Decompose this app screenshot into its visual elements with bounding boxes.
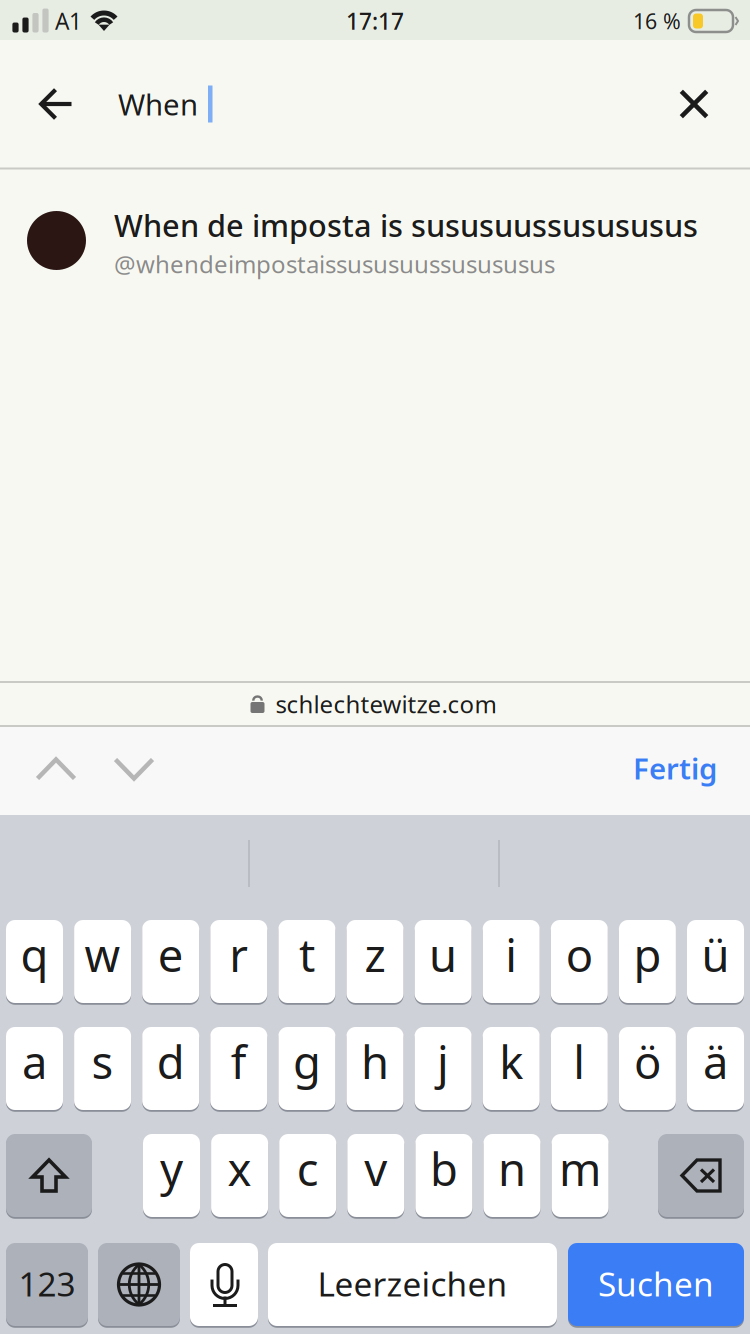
button[interactable]: schlechtewitze.com (123, 682, 623, 726)
button[interactable]: e (142, 917, 199, 1005)
button[interactable]: When de imposta is sususuussusususus (0, 169, 750, 289)
staticText: x (228, 1138, 252, 1199)
staticText: a (22, 1031, 47, 1092)
button[interactable]: When (100, 56, 560, 152)
button[interactable]: 123 (6, 1240, 88, 1328)
button[interactable]: i (483, 917, 540, 1005)
button[interactable]: d (142, 1024, 199, 1112)
button[interactable]: ü (687, 917, 744, 1005)
staticText: o (566, 924, 593, 985)
staticText: r (229, 924, 248, 985)
button[interactable]: g (278, 1024, 335, 1112)
staticText: Fertig (633, 748, 717, 787)
staticText: ä (703, 1031, 728, 1092)
staticText: d (157, 1031, 185, 1092)
staticText: ö (634, 1031, 661, 1092)
button[interactable]: Next (86, 725, 182, 813)
staticText: l (573, 1031, 585, 1092)
staticText: Leerzeichen (317, 1261, 507, 1306)
staticText: i (505, 924, 517, 985)
staticText: b (430, 1138, 458, 1199)
button[interactable]: b (415, 1131, 472, 1219)
button[interactable]: m (552, 1131, 609, 1219)
button[interactable]: y (143, 1131, 200, 1219)
staticText: When de imposta is sususuussusususus (114, 205, 698, 245)
staticText: w (85, 924, 121, 985)
staticText: s (92, 1031, 114, 1092)
button[interactable]: Fertig (600, 724, 750, 812)
staticText: k (499, 1031, 523, 1092)
button[interactable]: Back (9, 56, 103, 152)
staticText: v (364, 1138, 387, 1199)
staticText: When (118, 84, 198, 123)
button[interactable]: Delete (658, 1131, 744, 1219)
staticText: n (498, 1138, 526, 1199)
staticText: Suchen (598, 1261, 714, 1306)
staticText: 17:17 (346, 6, 404, 36)
staticText: schlechtewitze.com (275, 688, 496, 720)
button[interactable]: Clear text (646, 56, 742, 152)
button[interactable]: n (483, 1131, 540, 1219)
button[interactable]: w (74, 917, 131, 1005)
button[interactable]: x (211, 1131, 268, 1219)
staticText: c (297, 1138, 319, 1199)
staticText: q (20, 924, 48, 985)
staticText: t (299, 924, 315, 985)
staticText: f (231, 1031, 247, 1092)
button[interactable]: v (347, 1131, 404, 1219)
staticText: z (364, 924, 385, 985)
button[interactable]: Previous (8, 725, 104, 813)
staticText: g (293, 1031, 321, 1092)
button[interactable]: l (551, 1024, 608, 1112)
button[interactable]: t (278, 917, 335, 1005)
button[interactable]: k (483, 1024, 540, 1112)
button[interactable]: ö (619, 1024, 676, 1112)
button[interactable]: Dictate (190, 1240, 258, 1328)
button[interactable]: j (415, 1024, 472, 1112)
button[interactable]: o (551, 917, 608, 1005)
button[interactable]: z (346, 917, 403, 1005)
staticText: 16 % (633, 7, 681, 35)
button[interactable]: a (6, 1024, 63, 1112)
button[interactable]: f (210, 1024, 267, 1112)
staticText: A1 (55, 6, 82, 36)
button[interactable]: c (279, 1131, 336, 1219)
staticText: p (633, 924, 661, 985)
staticText: j (437, 1031, 449, 1092)
button[interactable]: s (74, 1024, 131, 1112)
button[interactable]: Leerzeichen (268, 1240, 557, 1328)
button[interactable]: r (210, 917, 267, 1005)
staticText: m (559, 1138, 601, 1199)
button[interactable]: Shift (6, 1131, 92, 1219)
button[interactable]: p (619, 917, 676, 1005)
button[interactable]: ä (687, 1024, 744, 1112)
staticText: e (158, 924, 184, 985)
button[interactable]: q (6, 917, 63, 1005)
button[interactable]: h (346, 1024, 403, 1112)
staticText: y (160, 1138, 183, 1199)
staticText: 123 (18, 1261, 75, 1306)
staticText: ü (701, 924, 729, 985)
button[interactable]: u (415, 917, 472, 1005)
staticText: u (429, 924, 457, 985)
staticText: @whendeimpostaissususuussusususus (114, 248, 555, 280)
button[interactable]: Suchen (568, 1240, 744, 1328)
button[interactable]: Next keyboard (98, 1240, 180, 1328)
staticText: h (361, 1031, 389, 1092)
